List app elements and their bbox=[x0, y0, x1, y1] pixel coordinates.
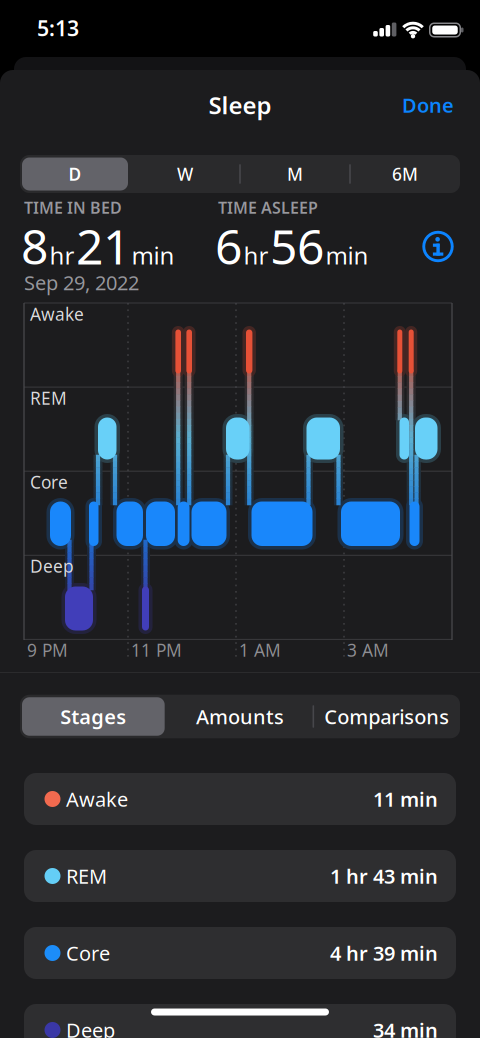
button[interactable]: W bbox=[133, 157, 237, 190]
button[interactable]: Stages bbox=[23, 697, 164, 736]
staticText: M bbox=[287, 162, 303, 185]
staticText: 1 AM bbox=[239, 638, 281, 661]
staticText: REM bbox=[30, 386, 67, 409]
staticText: 6 bbox=[215, 214, 242, 278]
staticText: Core bbox=[66, 940, 110, 966]
staticText: 9 PM bbox=[27, 638, 68, 661]
staticText: Awake bbox=[66, 786, 128, 812]
staticText: TIME IN BED bbox=[24, 197, 122, 218]
button[interactable]: Amounts bbox=[170, 697, 310, 736]
staticText: D bbox=[68, 162, 81, 185]
staticText: Core bbox=[30, 470, 68, 493]
staticText: W bbox=[177, 162, 193, 185]
staticText: 5:13 bbox=[37, 14, 79, 42]
staticText: 4 hr 39 min bbox=[330, 940, 438, 966]
staticText: Awake bbox=[30, 302, 84, 325]
staticText: Deep bbox=[30, 554, 74, 577]
button[interactable]: Done bbox=[388, 85, 468, 125]
staticText: Sep 29, 2022 bbox=[24, 269, 139, 296]
staticText: 1 hr 43 min bbox=[330, 863, 438, 889]
staticText: 11 min bbox=[373, 786, 438, 812]
staticText: TIME ASLEEP bbox=[218, 197, 318, 218]
staticText: hr bbox=[49, 239, 74, 271]
staticText: min bbox=[325, 239, 368, 271]
staticText: Comparisons bbox=[324, 703, 449, 730]
staticText: Amounts bbox=[196, 703, 284, 730]
staticText: 34 min bbox=[373, 1017, 438, 1038]
staticText: 6M bbox=[392, 162, 418, 185]
staticText: Deep bbox=[66, 1017, 115, 1038]
staticText: Done bbox=[402, 92, 454, 118]
staticText: 3 AM bbox=[347, 638, 389, 661]
staticText: Sleep bbox=[208, 89, 271, 121]
button[interactable]: M bbox=[243, 157, 347, 190]
button[interactable]: Comparisons bbox=[316, 697, 457, 736]
staticText: min bbox=[131, 239, 174, 271]
staticText: hr bbox=[243, 239, 268, 271]
staticText: REM bbox=[66, 863, 107, 889]
staticText: 11 PM bbox=[131, 638, 182, 661]
button[interactable]: 6M bbox=[353, 157, 457, 190]
staticText: 8 bbox=[21, 214, 48, 278]
button[interactable]: D bbox=[23, 157, 127, 190]
staticText: 21 bbox=[76, 214, 130, 278]
button[interactable] bbox=[423, 232, 452, 261]
staticText: Stages bbox=[60, 703, 126, 730]
staticText: 56 bbox=[270, 214, 324, 278]
